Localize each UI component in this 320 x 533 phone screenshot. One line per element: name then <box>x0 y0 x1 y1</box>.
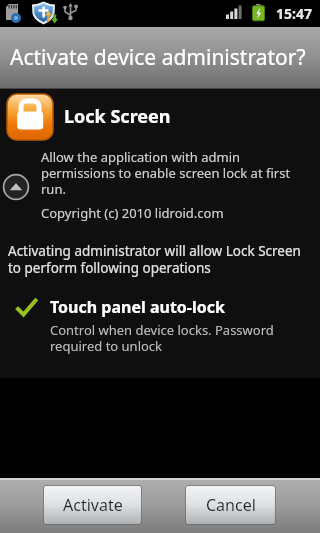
button[interactable]: Cancel <box>185 485 276 525</box>
staticText: Touch panel auto-lock <box>50 296 225 318</box>
staticText: Activate device administrator? <box>10 43 306 72</box>
button[interactable] <box>2 173 30 201</box>
staticText: 15:47 <box>276 4 312 23</box>
staticText: Allow the application with admin permiss… <box>41 148 291 197</box>
staticText: Lock Screen <box>64 104 171 129</box>
staticText: Activating administrator will allow Lock… <box>8 242 301 277</box>
staticText: Copyright (c) 2010 lidroid.com <box>41 204 224 222</box>
staticText: Activate <box>63 494 123 516</box>
staticText: Control when device locks. Password requ… <box>50 321 274 354</box>
staticText: Cancel <box>206 494 256 516</box>
button[interactable]: Activate <box>43 485 142 525</box>
